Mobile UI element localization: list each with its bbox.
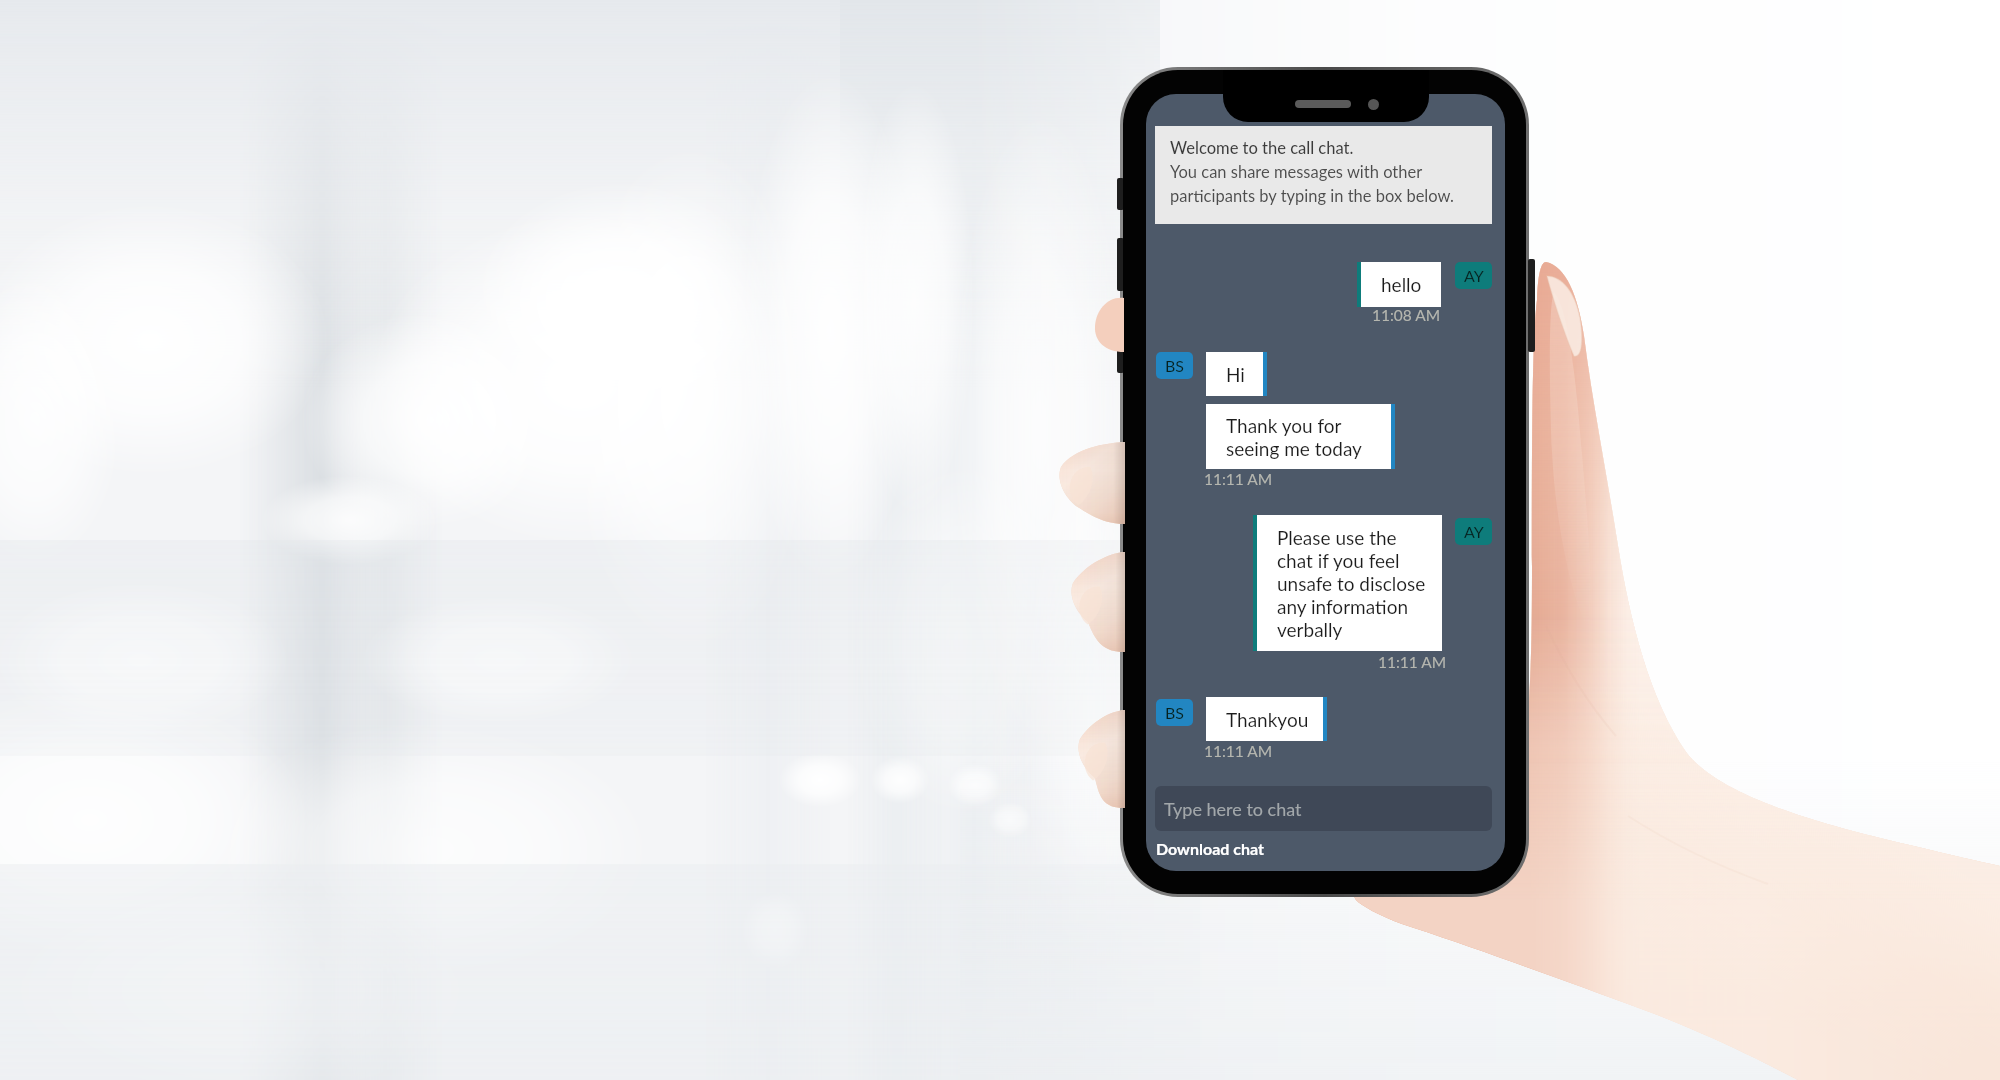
other: Volume up — [1117, 238, 1124, 291]
staticText: You can share messages with other — [1170, 162, 1423, 182]
staticText: AY — [1464, 522, 1484, 541]
staticText: Type here to chat — [1164, 798, 1302, 820]
staticText: 11:08 AM — [1372, 306, 1441, 325]
button[interactable]: Please use the chat if you feel unsafe t… — [1253, 515, 1442, 651]
staticText: BS — [1165, 703, 1185, 722]
other: Mute switch — [1117, 178, 1124, 210]
staticText: BS — [1165, 356, 1185, 375]
button[interactable]: hello — [1357, 262, 1441, 307]
button[interactable]: Download chat — [1156, 839, 1264, 858]
button[interactable]: AY — [1455, 518, 1492, 545]
staticText: 11:11 AM — [1204, 470, 1273, 489]
button[interactable]: Thankyou — [1206, 697, 1327, 741]
other: Power — [1528, 259, 1535, 352]
staticText: Thank you for seeing me today — [1226, 414, 1362, 460]
button[interactable]: Type here to chat — [1155, 786, 1492, 831]
staticText: participants by typing in the box below. — [1170, 186, 1454, 206]
staticText: 11:11 AM — [1204, 742, 1273, 761]
staticText: Please use the chat if you feel unsafe t… — [1277, 526, 1426, 641]
button[interactable]: BS — [1156, 352, 1193, 379]
staticText: AY — [1464, 266, 1484, 285]
staticText: Welcome to the call chat. — [1170, 138, 1354, 158]
button[interactable]: AY — [1455, 262, 1492, 289]
button[interactable]: Thank you for seeing me today — [1206, 404, 1395, 469]
other: Volume down — [1117, 313, 1124, 373]
button[interactable]: BS — [1156, 699, 1193, 726]
button[interactable]: Hi — [1206, 352, 1267, 396]
staticText: 11:11 AM — [1378, 653, 1447, 672]
staticText: Hi — [1226, 363, 1245, 386]
staticText: Download chat — [1156, 839, 1264, 858]
staticText: Thankyou — [1226, 708, 1309, 731]
staticText: hello — [1381, 273, 1422, 296]
